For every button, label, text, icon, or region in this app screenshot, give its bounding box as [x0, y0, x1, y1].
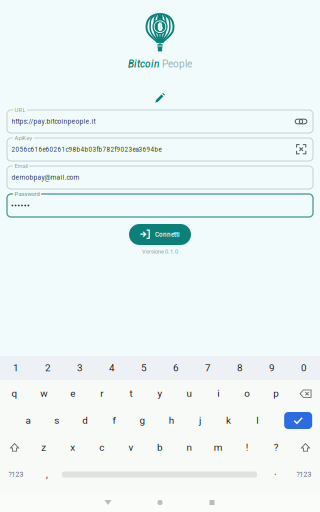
- staticText: f: [112, 415, 115, 426]
- button[interactable]: h: [157, 407, 186, 434]
- staticText: a: [25, 415, 30, 426]
- button[interactable]: y: [145, 380, 175, 407]
- staticText: 1: [13, 362, 19, 374]
- staticText: i: [217, 388, 219, 399]
- button[interactable]: o: [233, 380, 262, 407]
- staticText: ?: [274, 442, 279, 453]
- button[interactable]: n: [174, 434, 204, 461]
- button[interactable]: ?123: [0, 461, 32, 488]
- button[interactable]: 3: [64, 356, 96, 380]
- staticText: p: [273, 388, 279, 399]
- button[interactable]: Backspace: [291, 380, 320, 407]
- button[interactable]: Home: [134, 493, 186, 512]
- button[interactable]: w: [29, 380, 58, 407]
- staticText: z: [41, 442, 46, 453]
- button[interactable]: Back: [82, 493, 134, 512]
- staticText: Connetti: [155, 231, 180, 238]
- button[interactable]: 7: [192, 356, 224, 380]
- button[interactable]: 2: [32, 356, 64, 380]
- button[interactable]: a: [14, 407, 42, 434]
- staticText: 7: [205, 362, 211, 374]
- staticText: b: [157, 442, 163, 453]
- staticText: e: [70, 388, 75, 399]
- button[interactable]: ?123: [288, 461, 320, 488]
- staticText: l: [256, 415, 258, 426]
- staticText: u: [187, 388, 192, 399]
- button[interactable]: i: [204, 380, 233, 407]
- button[interactable]: m: [204, 434, 233, 461]
- staticText: ·: [274, 469, 276, 480]
- staticText: r: [100, 388, 103, 399]
- button[interactable]: Shift: [0, 434, 29, 461]
- staticText: 8: [237, 362, 243, 374]
- staticText: v: [128, 442, 133, 453]
- staticText: People: [162, 58, 192, 70]
- button[interactable]: 5: [128, 356, 160, 380]
- staticText: 9: [269, 362, 275, 374]
- staticText: https://pay.bitcoinpeople.it: [11, 118, 95, 125]
- staticText: 5: [141, 362, 147, 374]
- button[interactable]: 0: [288, 356, 320, 380]
- button[interactable]: k: [214, 407, 243, 434]
- button[interactable]: Connetti: [129, 224, 191, 245]
- button[interactable]: u: [174, 380, 204, 407]
- button[interactable]: l: [243, 407, 272, 434]
- button[interactable]: 4: [96, 356, 128, 380]
- staticText: 2: [45, 362, 51, 374]
- staticText: 0: [301, 362, 307, 374]
- button[interactable]: b: [145, 434, 175, 461]
- staticText: q: [11, 388, 17, 399]
- staticText: 3: [77, 362, 83, 374]
- button[interactable]: 1: [0, 356, 32, 380]
- button[interactable]: x: [58, 434, 87, 461]
- staticText: c: [99, 442, 104, 453]
- staticText: g: [140, 415, 146, 426]
- button[interactable]: Edit: [147, 93, 173, 103]
- button[interactable]: 9: [256, 356, 288, 380]
- button[interactable]: r: [87, 380, 116, 407]
- staticText: j: [199, 415, 201, 426]
- button[interactable]: ,: [32, 461, 62, 488]
- staticText: s: [54, 415, 59, 426]
- staticText: w: [40, 388, 47, 399]
- staticText: n: [187, 442, 192, 453]
- button[interactable]: g: [128, 407, 157, 434]
- button[interactable]: s: [42, 407, 71, 434]
- button[interactable]: q: [0, 380, 29, 407]
- button[interactable]: c: [87, 434, 116, 461]
- button[interactable]: !: [233, 434, 262, 461]
- button[interactable]: d: [71, 407, 100, 434]
- button[interactable]: Shift: [291, 434, 320, 461]
- staticText: Bitcoin: [128, 58, 159, 70]
- staticText: 4: [109, 362, 115, 374]
- staticText: o: [244, 388, 250, 399]
- button[interactable]: v: [116, 434, 145, 461]
- button[interactable]: ·: [262, 461, 288, 488]
- staticText: t: [129, 388, 132, 399]
- staticText: 6: [173, 362, 179, 374]
- staticText: 2056c616e60261c98b4b03fb782f9023ea3694be: [11, 146, 161, 153]
- staticText: y: [157, 388, 162, 399]
- staticText: Versione 0.1.0: [142, 248, 178, 255]
- button[interactable]: Recents: [186, 493, 238, 512]
- staticText: m: [214, 442, 223, 453]
- staticText: ?123: [8, 470, 23, 478]
- staticText: URL: [15, 107, 26, 113]
- button[interactable]: z: [29, 434, 58, 461]
- button[interactable]: Enter: [276, 407, 320, 434]
- staticText: x: [70, 442, 75, 453]
- button[interactable]: 6: [160, 356, 192, 380]
- staticText: Password: [15, 191, 40, 197]
- staticText: !: [246, 442, 249, 453]
- staticText: ApiKey: [15, 135, 33, 141]
- staticText: h: [169, 415, 174, 426]
- button[interactable]: t: [116, 380, 145, 407]
- button[interactable]: f: [100, 407, 128, 434]
- button[interactable]: p: [262, 380, 291, 407]
- button[interactable]: e: [58, 380, 87, 407]
- button[interactable]: 8: [224, 356, 256, 380]
- button[interactable]: j: [186, 407, 214, 434]
- button[interactable]: Space: [62, 461, 257, 488]
- button[interactable]: ?: [262, 434, 291, 461]
- staticText: d: [82, 415, 88, 426]
